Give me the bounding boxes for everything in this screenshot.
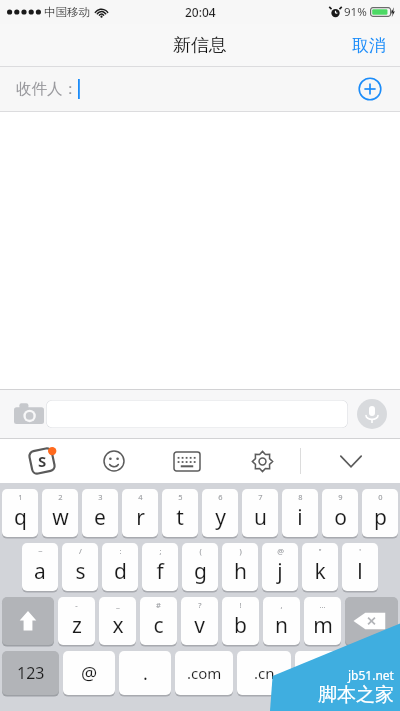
staticText: x — [112, 611, 124, 640]
staticText: 0 — [378, 492, 383, 502]
button[interactable]: Add contact — [358, 77, 382, 101]
staticText: e — [94, 503, 106, 532]
staticText: 123 — [17, 662, 45, 684]
button[interactable]: Shift — [2, 597, 54, 645]
button[interactable]: Voice input — [357, 399, 387, 429]
staticText: 20:04 — [185, 4, 216, 20]
staticText: : — [119, 546, 122, 556]
staticText: ; — [159, 546, 162, 556]
button[interactable]: Emoji — [78, 439, 150, 483]
button[interactable]: 1 — [2, 489, 38, 537]
button[interactable]: - — [58, 597, 95, 645]
staticText: v — [194, 611, 205, 640]
button[interactable] — [295, 651, 398, 695]
button[interactable]: 9 — [322, 489, 358, 537]
staticText: ) — [239, 546, 242, 556]
staticText: . — [143, 661, 148, 686]
staticText: S — [38, 451, 47, 471]
button[interactable]: 7 — [242, 489, 278, 537]
staticText: 取消 — [352, 35, 386, 56]
button[interactable]: ~ — [22, 543, 58, 591]
staticText: @ — [277, 546, 284, 556]
button[interactable]: Backspace — [345, 597, 398, 645]
staticText: m — [313, 611, 333, 640]
button[interactable]: @ — [63, 651, 115, 695]
button[interactable]: ! — [222, 597, 259, 645]
staticText: 收件人： — [16, 79, 78, 99]
button[interactable]: _ — [99, 597, 136, 645]
staticText: ( — [199, 546, 202, 556]
staticText: 2 — [58, 492, 63, 502]
button[interactable]: Camera — [14, 402, 44, 426]
staticText: d — [114, 557, 127, 586]
button[interactable]: 5 — [162, 489, 198, 537]
button[interactable]: " — [302, 543, 338, 591]
button[interactable]: ; — [142, 543, 178, 591]
button[interactable]: ? — [181, 597, 218, 645]
staticText: 新信息 — [173, 34, 227, 57]
staticText: c — [153, 611, 164, 640]
button[interactable]: ) — [222, 543, 258, 591]
button[interactable]: # — [140, 597, 177, 645]
staticText: s — [75, 557, 86, 586]
staticText: w — [52, 503, 69, 532]
button[interactable]: ' — [342, 543, 378, 591]
staticText: 6 — [218, 492, 223, 502]
staticText: l — [357, 557, 363, 586]
staticText: h — [234, 557, 247, 586]
staticText: j — [277, 557, 283, 586]
staticText: b — [234, 611, 247, 640]
button[interactable]: 4 — [122, 489, 158, 537]
button[interactable]: 取消 — [338, 27, 400, 64]
button[interactable]: @ — [262, 543, 298, 591]
staticText: / — [79, 546, 82, 556]
staticText: ? — [198, 600, 202, 610]
staticText: r — [136, 503, 145, 532]
button[interactable]: 0 — [362, 489, 398, 537]
button[interactable]: Settings — [224, 439, 300, 483]
staticText: ' — [359, 546, 361, 556]
button[interactable]: 3 — [82, 489, 118, 537]
button[interactable]: .cn — [237, 651, 291, 695]
button[interactable]: ... — [304, 597, 341, 645]
staticText: 脚本之家 — [318, 683, 394, 707]
staticText: " — [318, 546, 322, 556]
staticText: 4 — [138, 492, 143, 502]
button[interactable]: .com — [175, 651, 233, 695]
staticText: 8 — [298, 492, 303, 502]
staticText: k — [314, 557, 326, 586]
staticText: g — [194, 557, 207, 586]
staticText: y — [215, 503, 226, 532]
button[interactable]: 123 — [2, 651, 59, 695]
staticText: # — [156, 600, 161, 610]
button[interactable]: Sogou input method — [6, 439, 78, 483]
button[interactable]: 2 — [42, 489, 78, 537]
button[interactable]: Keyboard layout — [150, 439, 224, 483]
staticText: p — [374, 503, 387, 532]
button[interactable]: 8 — [282, 489, 318, 537]
staticText: ~ — [38, 546, 43, 556]
staticText: i — [297, 503, 303, 532]
staticText: u — [254, 503, 267, 532]
button[interactable]: Hide keyboard — [301, 439, 400, 483]
staticText: .com — [187, 663, 222, 683]
button[interactable]: 收件人： — [0, 67, 400, 111]
button[interactable]: , — [263, 597, 300, 645]
staticText: , — [280, 600, 283, 610]
staticText: - — [75, 600, 78, 610]
staticText: t — [176, 503, 184, 532]
staticText: _ — [116, 600, 120, 610]
staticText: 1 — [18, 492, 23, 502]
button[interactable]: . — [119, 651, 171, 695]
staticText: @ — [81, 661, 98, 686]
staticText: 7 — [258, 492, 263, 502]
button[interactable]: : — [102, 543, 138, 591]
staticText: o — [334, 503, 347, 532]
button[interactable]: 6 — [202, 489, 238, 537]
button[interactable] — [46, 400, 348, 428]
staticText: q — [14, 503, 27, 532]
staticText: 3 — [98, 492, 103, 502]
button[interactable]: ( — [182, 543, 218, 591]
button[interactable]: / — [62, 543, 98, 591]
staticText: z — [72, 611, 82, 640]
